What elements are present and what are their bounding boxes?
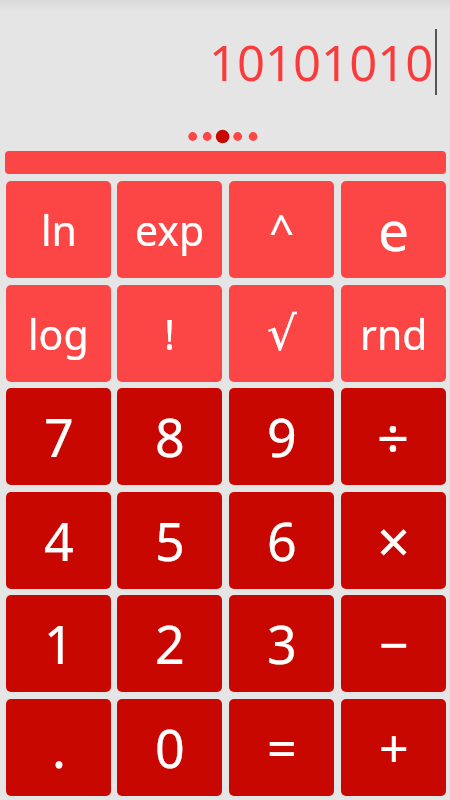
staticText: ^ [269,200,295,260]
staticText: = [267,712,297,783]
staticText: ! [164,306,176,362]
staticText: 7 [44,401,74,472]
button[interactable]: × [341,492,446,589]
button[interactable] [5,151,446,174]
button[interactable]: ^ [229,181,334,278]
button[interactable]: + [341,699,446,796]
staticText: ÷ [377,399,410,475]
staticText: − [379,608,409,679]
staticText: rnd [360,306,428,362]
staticText: . [52,712,66,783]
staticText: 1 [44,608,74,679]
button[interactable]: 1 [6,595,111,692]
button[interactable]: ln [6,181,111,278]
staticText: ln [41,202,77,258]
staticText: √ [267,306,297,361]
button[interactable]: − [341,595,446,692]
button[interactable]: ! [117,285,222,382]
button[interactable]: 3 [229,595,334,692]
button[interactable]: e [341,181,446,278]
staticText: exp [135,202,205,258]
staticText: 5 [155,505,185,576]
button[interactable]: 2 [117,595,222,692]
button[interactable]: rnd [341,285,446,382]
button[interactable]: = [229,699,334,796]
staticText: × [377,501,411,580]
staticText: log [28,306,89,362]
staticText: 0 [155,712,185,783]
staticText: + [379,712,409,783]
button[interactable]: 6 [229,492,334,589]
button[interactable]: exp [117,181,222,278]
button[interactable]: 0 [117,699,222,796]
button[interactable]: log [6,285,111,382]
staticText: 9 [267,401,297,472]
staticText: 4 [44,505,74,576]
staticText: 10101010 [209,29,434,96]
staticText: 6 [267,505,297,576]
button[interactable]: . [6,699,111,796]
staticText: 3 [267,608,297,679]
button[interactable]: √ [229,285,334,382]
button[interactable]: 5 [117,492,222,589]
staticText: 2 [155,608,185,679]
button[interactable]: 4 [6,492,111,589]
button[interactable]: 8 [117,388,222,485]
staticText: 8 [155,401,185,472]
button[interactable]: ÷ [341,388,446,485]
button[interactable]: 9 [229,388,334,485]
button[interactable]: 7 [6,388,111,485]
staticText: e [378,192,410,267]
